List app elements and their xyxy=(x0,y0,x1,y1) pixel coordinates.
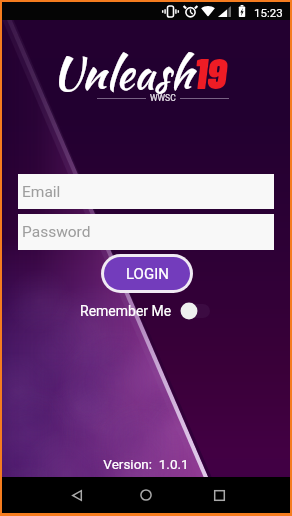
staticText: Unleash xyxy=(52,41,193,105)
staticText: LOGIN xyxy=(126,265,169,283)
button[interactable]: Recent apps xyxy=(194,477,244,513)
button[interactable]: Back xyxy=(52,477,102,513)
button[interactable]: Password xyxy=(18,214,274,250)
button[interactable]: Email xyxy=(18,174,274,209)
button[interactable] xyxy=(180,302,212,320)
staticText: Email xyxy=(22,183,61,201)
button[interactable]: Home xyxy=(121,477,171,513)
staticText: 15:23 xyxy=(254,6,283,19)
staticText: Password xyxy=(22,223,91,241)
staticText: Remember Me xyxy=(80,303,172,319)
staticText: Version: 1.0.1 xyxy=(2,456,290,472)
staticText: WWSC xyxy=(150,93,176,103)
button[interactable]: LOGIN xyxy=(104,257,190,290)
staticText: 19 xyxy=(194,45,227,98)
